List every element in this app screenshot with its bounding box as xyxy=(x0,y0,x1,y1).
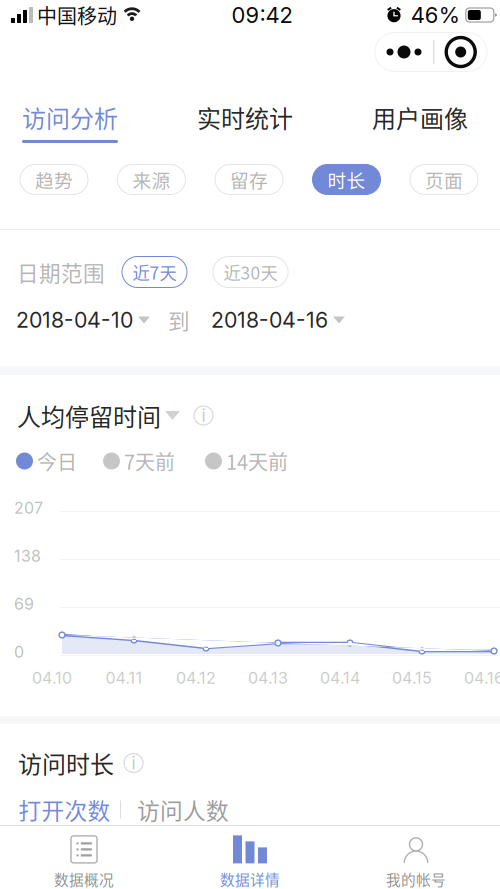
staticText: 2018-04-10 xyxy=(16,307,133,333)
staticText: 69 xyxy=(14,594,34,614)
button[interactable]: 近7天 xyxy=(122,256,187,287)
staticText: 访问时长 xyxy=(18,746,114,780)
staticText: 来源 xyxy=(132,166,170,193)
button[interactable]: 用户画像 xyxy=(350,72,490,148)
staticText: 留存 xyxy=(230,166,268,193)
button[interactable]: 数据概况 xyxy=(1,826,167,889)
staticText: 04.12 xyxy=(176,668,216,688)
staticText: 数据详情 xyxy=(220,868,280,889)
staticText: 人均停留时间 xyxy=(17,398,161,433)
staticText: 0 xyxy=(14,642,24,662)
staticText: 04.13 xyxy=(248,668,288,688)
staticText: 时长 xyxy=(327,166,365,193)
staticText: 日期范围 xyxy=(17,256,105,288)
staticText: 2018-04-16 xyxy=(211,307,328,333)
staticText: 04.10 xyxy=(32,668,72,688)
staticText: i xyxy=(131,753,135,773)
button[interactable]: 2018-04-10 xyxy=(16,307,150,333)
staticText: 04.14 xyxy=(320,668,360,688)
staticText: 实时统计 xyxy=(197,100,293,135)
staticText: 趋势 xyxy=(35,166,73,193)
staticText: 7天前 xyxy=(124,446,175,475)
button[interactable]: 趋势 xyxy=(20,164,88,194)
staticText: 近7天 xyxy=(132,259,176,285)
staticText: 04.16 xyxy=(464,668,500,688)
staticText: 04.11 xyxy=(105,668,142,688)
staticText: 用户画像 xyxy=(372,100,468,135)
button[interactable]: 时长 xyxy=(312,164,380,194)
button[interactable]: Close xyxy=(434,32,487,71)
button[interactable]: 访问人数 xyxy=(121,788,245,831)
staticText: 访问人数 xyxy=(137,793,229,826)
staticText: 到 xyxy=(168,304,190,336)
button[interactable]: 我的帐号 xyxy=(333,826,499,889)
button[interactable]: 留存 xyxy=(215,164,283,194)
staticText: i xyxy=(201,405,205,426)
staticText: 中国移动 xyxy=(37,0,117,29)
button[interactable]: 实时统计 xyxy=(175,72,315,148)
button[interactable]: 打开次数 xyxy=(9,788,120,831)
button[interactable]: 2018-04-16 xyxy=(211,307,345,333)
staticText: 46% xyxy=(411,2,460,28)
button[interactable]: 近30天 xyxy=(213,256,288,287)
staticText: 访问分析 xyxy=(22,100,118,135)
staticText: 打开次数 xyxy=(18,793,110,826)
staticText: 14天前 xyxy=(226,446,288,475)
button[interactable]: 页面 xyxy=(410,164,478,194)
staticText: 数据概况 xyxy=(54,868,114,889)
staticText: 页面 xyxy=(425,166,463,193)
button[interactable]: 来源 xyxy=(117,164,185,194)
button[interactable]: 数据详情 xyxy=(167,826,333,889)
staticText: 138 xyxy=(14,546,41,566)
staticText: 04.15 xyxy=(392,668,432,688)
staticText: 我的帐号 xyxy=(386,868,446,889)
button[interactable]: 访问分析 xyxy=(0,72,140,148)
button[interactable]: More xyxy=(375,32,433,71)
staticText: 207 xyxy=(14,498,43,518)
staticText: 今日 xyxy=(37,446,77,475)
staticText: 09:42 xyxy=(231,2,292,28)
staticText: 近30天 xyxy=(223,259,277,285)
